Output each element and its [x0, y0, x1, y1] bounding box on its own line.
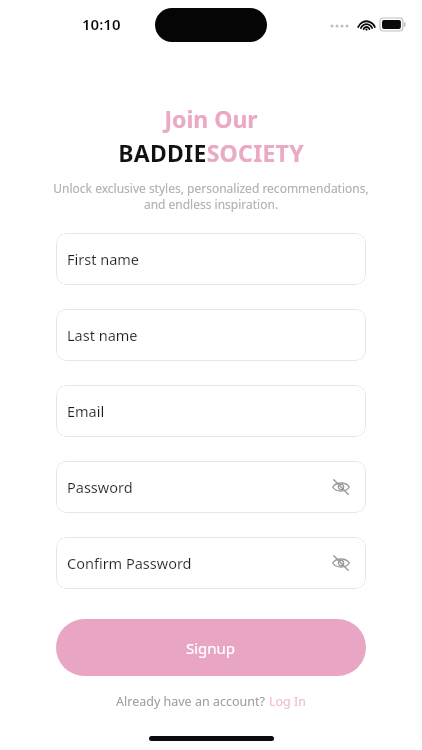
button[interactable]: Email — [56, 385, 366, 437]
button[interactable]: Confirm Password — [56, 537, 366, 589]
button[interactable]: Show password — [329, 551, 353, 575]
staticText: Already have an account? — [116, 693, 269, 710]
staticText: Password — [67, 477, 133, 497]
button[interactable]: Last name — [56, 309, 366, 361]
staticText: Email — [67, 401, 105, 421]
button[interactable]: Log In — [269, 693, 307, 710]
staticText: BADDIESOCIETY — [118, 137, 304, 168]
staticText: Join Our — [164, 103, 258, 134]
staticText: Last name — [67, 325, 138, 345]
staticText: Confirm Password — [67, 553, 192, 573]
staticText: Signup — [186, 638, 236, 658]
button[interactable]: Show password — [329, 475, 353, 499]
staticText: Log In — [269, 693, 307, 710]
staticText: Unlock exclusive styles, personalized re… — [53, 180, 369, 213]
staticText: 10:10 — [82, 14, 121, 34]
staticText: First name — [67, 249, 140, 269]
button[interactable]: Signup — [56, 619, 366, 676]
button[interactable]: First name — [56, 233, 366, 285]
button[interactable]: Password — [56, 461, 366, 513]
